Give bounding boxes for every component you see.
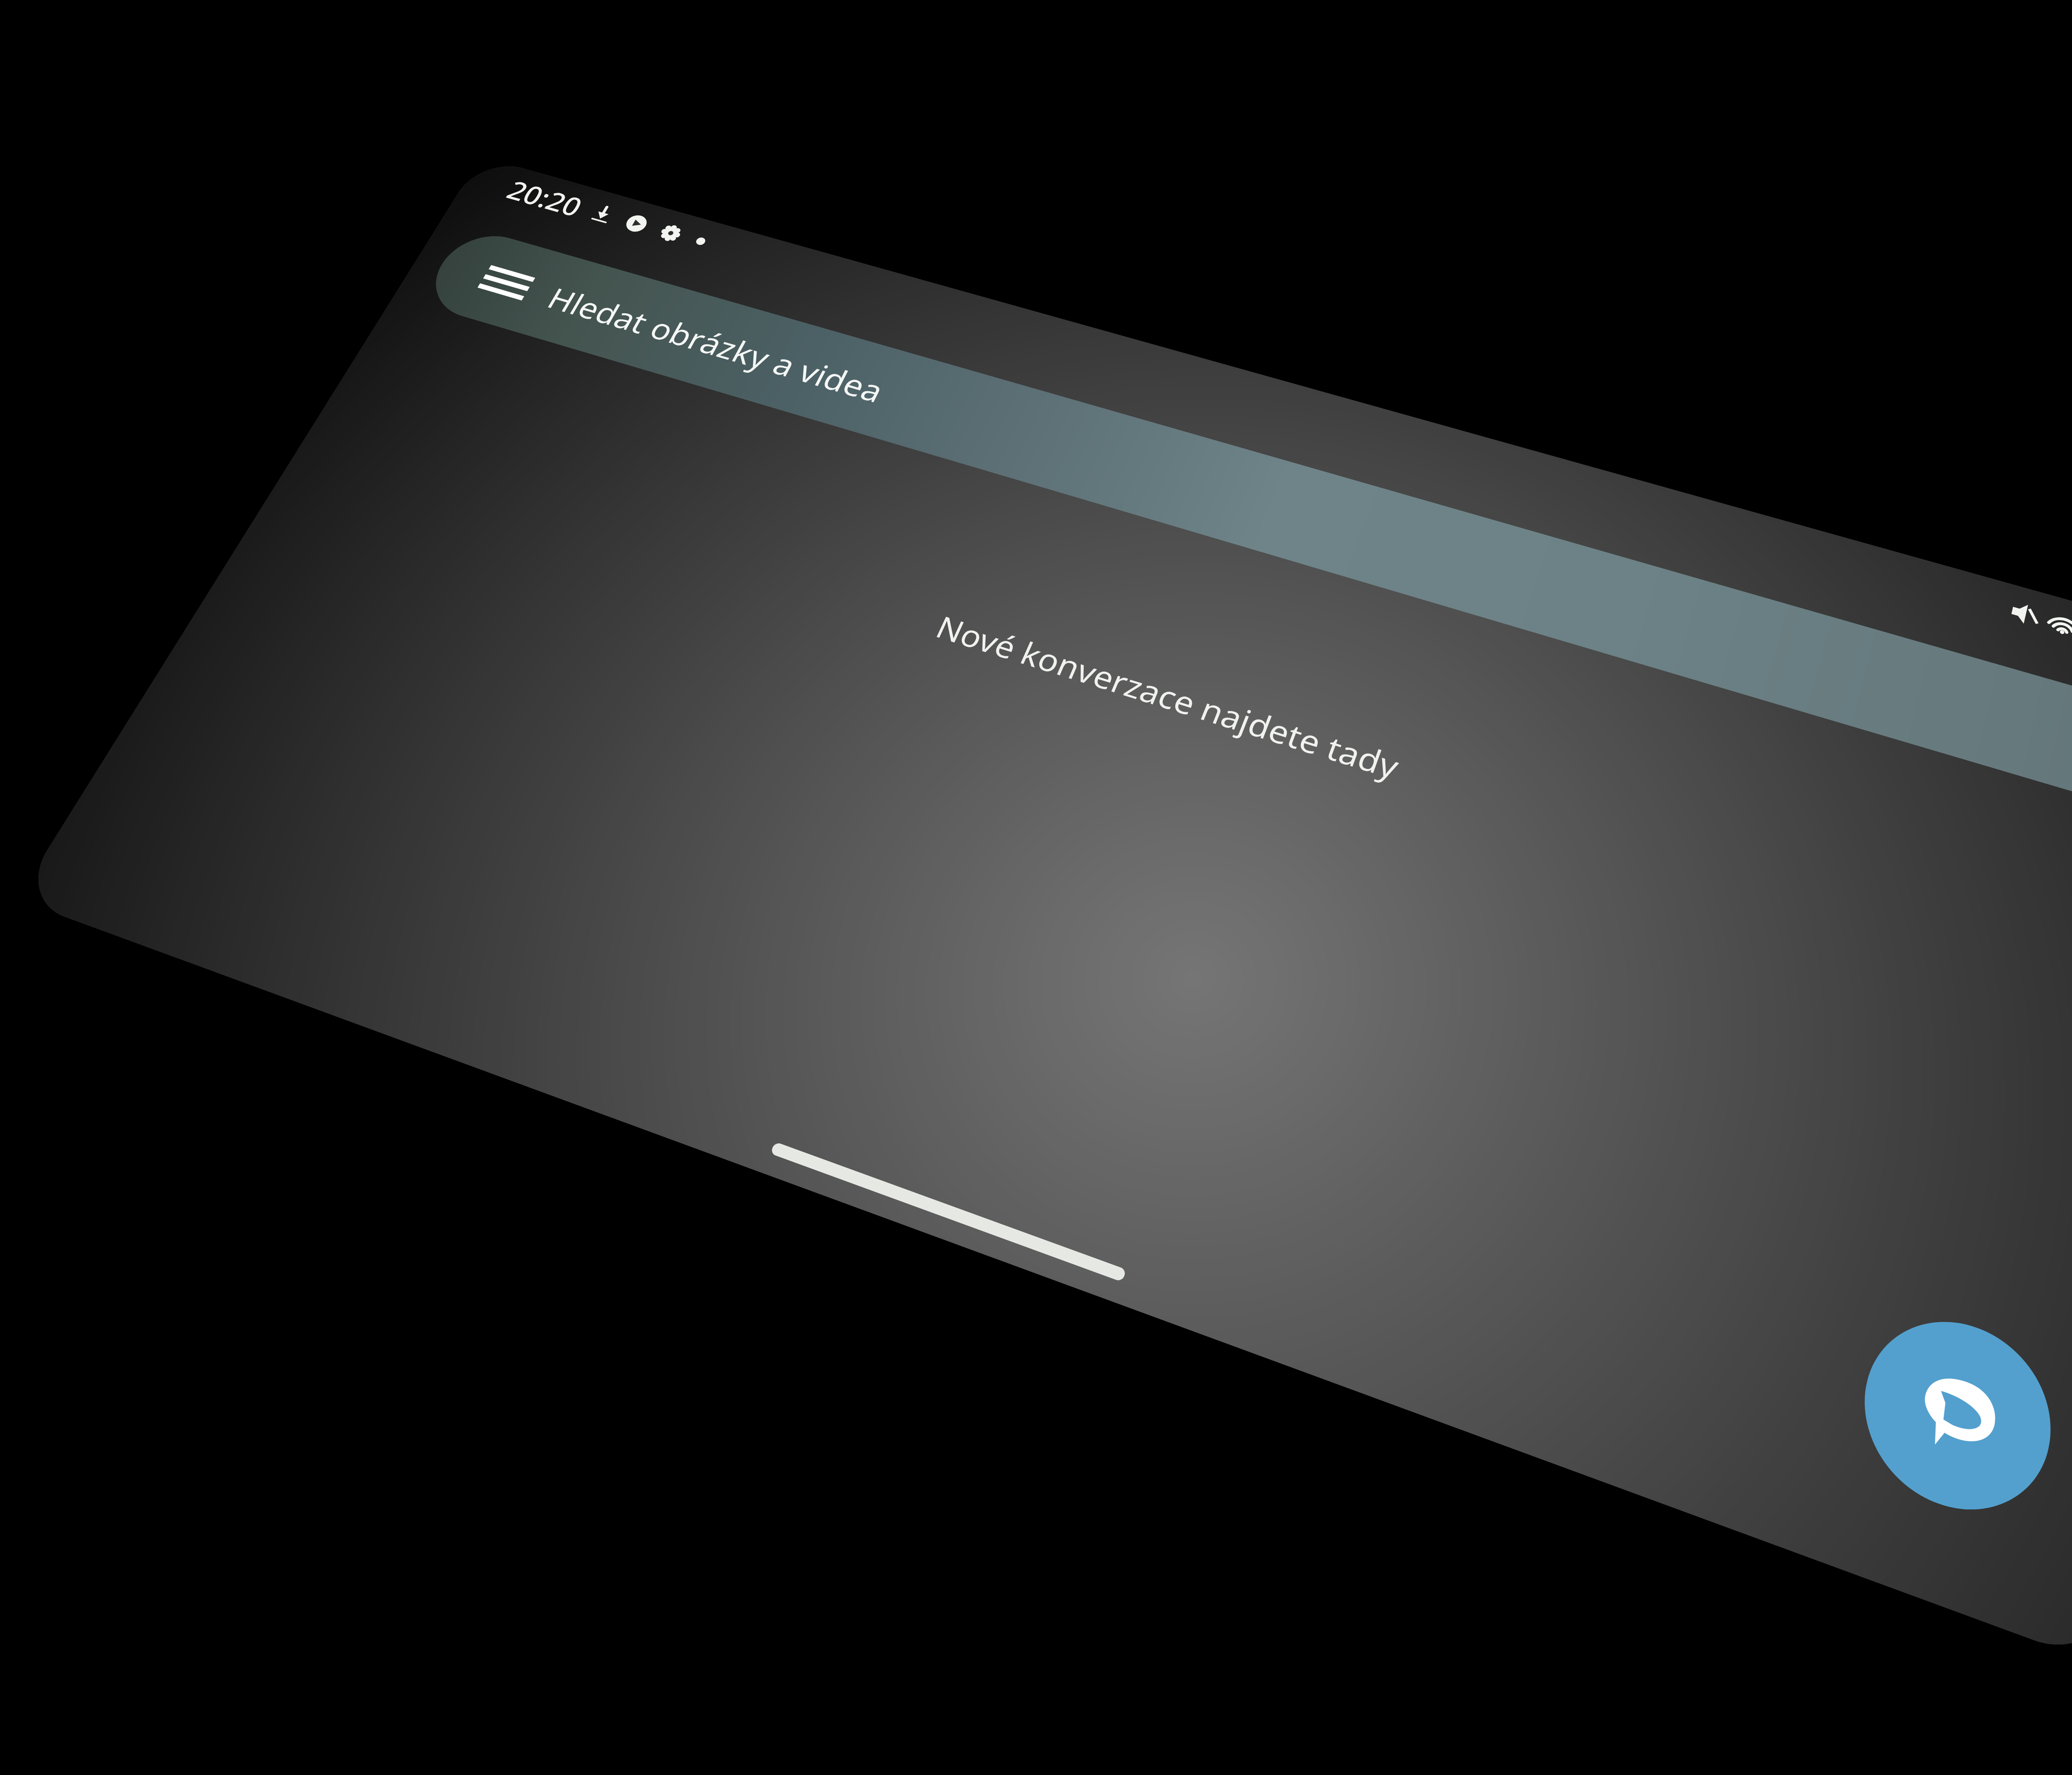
staticText: Nové konverzace najdete tady [341, 171, 566, 193]
button[interactable]: New conversation [821, 341, 892, 411]
